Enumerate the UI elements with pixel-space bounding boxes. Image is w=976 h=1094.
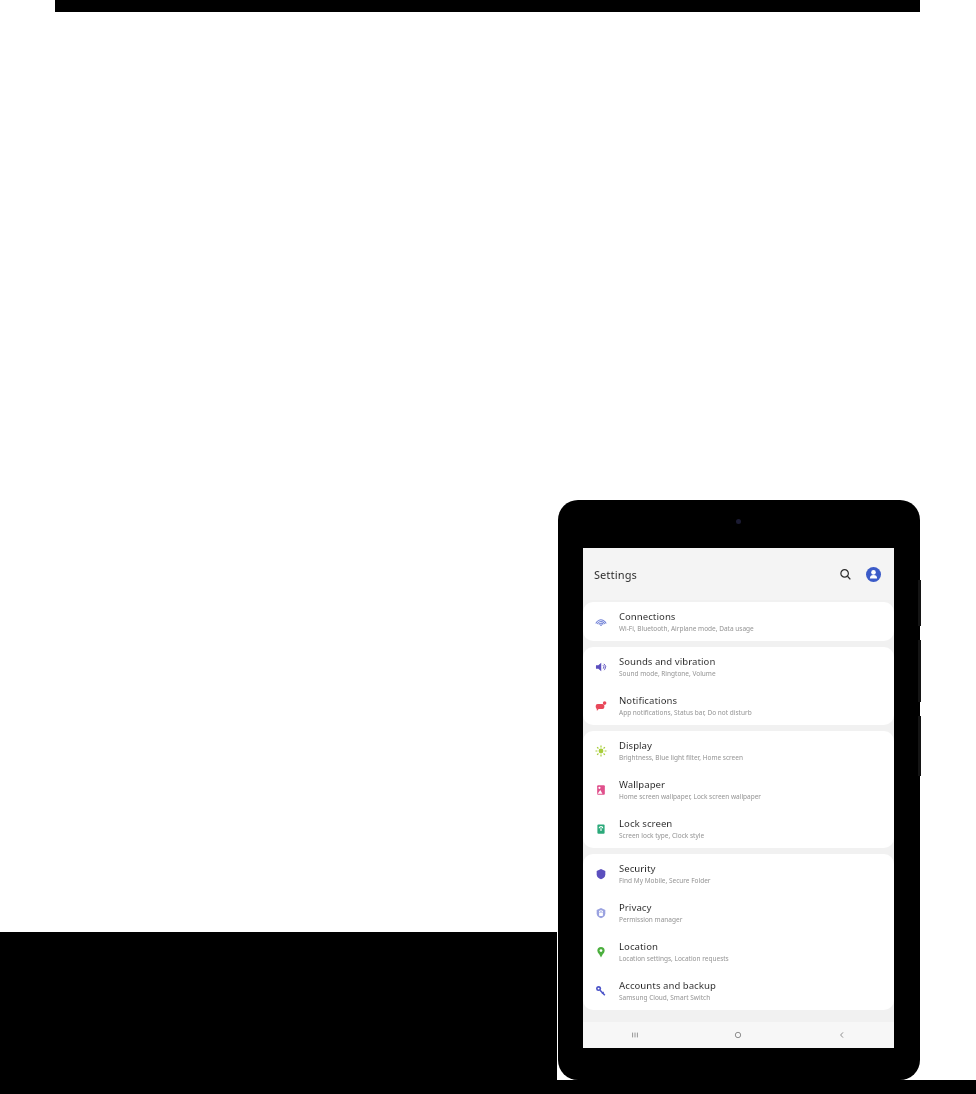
staticText: Display [619, 739, 653, 752]
staticText: Settings [594, 567, 637, 582]
button[interactable]: Display [583, 731, 894, 770]
button[interactable]: Wallpaper [583, 770, 894, 809]
button[interactable]: Sounds and vibration [583, 647, 894, 686]
staticText: Location [619, 940, 658, 953]
staticText: Privacy [619, 901, 652, 914]
button[interactable]: Security [583, 854, 894, 893]
button[interactable]: Lock screen [583, 809, 894, 848]
button[interactable]: Notifications [583, 686, 894, 725]
button[interactable]: Home [686, 1022, 790, 1048]
staticText: Find My Mobile, Secure Folder [619, 876, 711, 885]
staticText: Screen lock type, Clock style [619, 831, 705, 840]
staticText: Samsung Cloud, Smart Switch [619, 993, 711, 1002]
staticText: Wi-Fi, Bluetooth, Airplane mode, Data us… [619, 624, 754, 633]
staticText: Security [619, 862, 656, 875]
staticText: Location settings, Location requests [619, 954, 729, 963]
button[interactable]: Location [583, 932, 894, 971]
button[interactable]: Accounts and backup [583, 971, 894, 1010]
button[interactable]: Privacy [583, 893, 894, 932]
button[interactable]: Search [834, 563, 856, 585]
button[interactable]: Account [862, 563, 884, 585]
button[interactable]: Back [790, 1022, 894, 1048]
staticText: Sounds and vibration [619, 655, 716, 668]
staticText: Brightness, Blue light filter, Home scre… [619, 753, 743, 762]
staticText: App notifications, Status bar, Do not di… [619, 708, 752, 717]
button[interactable]: Recents [583, 1022, 686, 1048]
staticText: Sound mode, Ringtone, Volume [619, 669, 716, 678]
staticText: Connections [619, 610, 676, 623]
staticText: Lock screen [619, 817, 673, 830]
staticText: Accounts and backup [619, 979, 716, 992]
staticText: Wallpaper [619, 778, 665, 791]
button[interactable]: Connections [583, 602, 894, 641]
staticText: Notifications [619, 694, 678, 707]
staticText: Permission manager [619, 915, 683, 924]
staticText: Home screen wallpaper, Lock screen wallp… [619, 792, 762, 801]
